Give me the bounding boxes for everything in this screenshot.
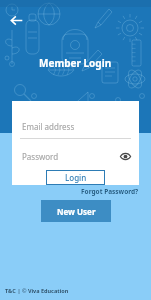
button[interactable]: Forgot Password? <box>81 187 139 196</box>
staticText: | © Viva Education <box>16 287 69 294</box>
staticText: Member Login <box>39 56 112 70</box>
button[interactable]: Password <box>12 145 139 167</box>
staticText: Password <box>22 151 59 162</box>
button[interactable]: Show password <box>117 148 133 164</box>
staticText: Email address <box>22 121 75 132</box>
button[interactable]: Back <box>4 8 28 32</box>
button[interactable]: New User <box>41 200 111 222</box>
button[interactable]: T&C <box>5 287 16 294</box>
staticText: Forgot Password? <box>81 187 139 196</box>
button[interactable]: Email address <box>12 114 139 138</box>
button[interactable]: Login <box>46 170 105 185</box>
staticText: Login <box>65 172 87 183</box>
staticText: New User <box>57 206 96 217</box>
staticText: T&C <box>5 287 16 294</box>
